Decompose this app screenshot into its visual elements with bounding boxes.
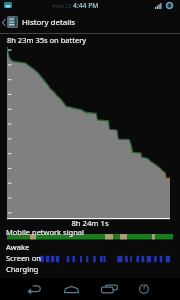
staticText: 8h 24m 1s — [0, 218, 180, 228]
button[interactable]: Navigate up — [0, 11, 180, 33]
staticText: 8h 23m 35s on battery — [7, 35, 87, 45]
staticText: mon 25 — [52, 2, 72, 9]
staticText: Screen on — [6, 253, 41, 263]
staticText: Awake — [6, 242, 30, 252]
button[interactable]: Navigate up — [0, 11, 7, 33]
button[interactable]: Power — [127, 278, 161, 300]
button[interactable]: Home — [53, 278, 89, 300]
staticText: 4:44 PM — [73, 1, 99, 10]
staticText: Mobile network signal — [6, 227, 84, 237]
staticText: History details — [22, 17, 76, 28]
button[interactable]: Recent apps — [91, 278, 127, 300]
staticText: Charging — [6, 264, 39, 274]
button[interactable]: Back — [14, 278, 54, 300]
